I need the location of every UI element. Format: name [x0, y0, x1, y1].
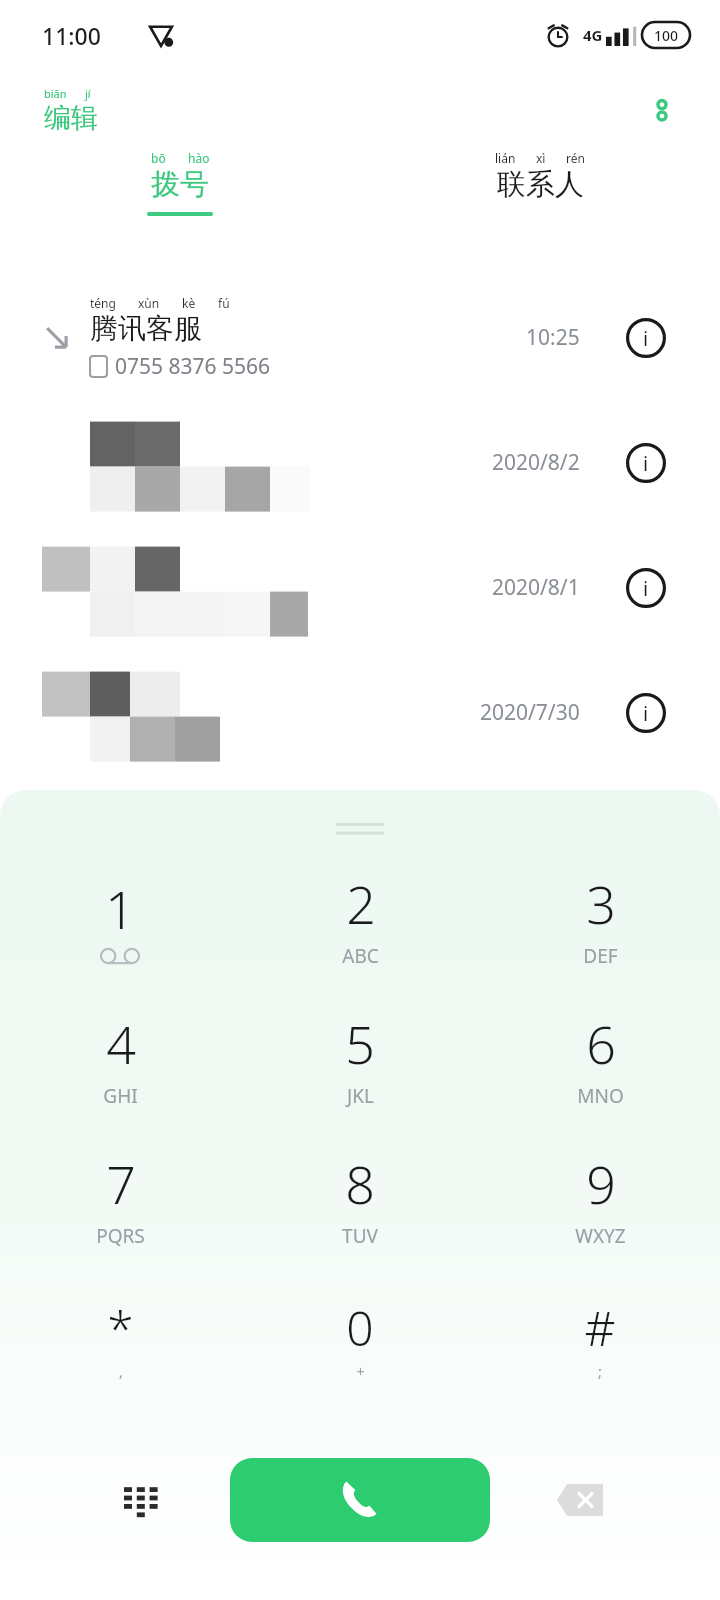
staticText: 11:00 — [42, 20, 101, 51]
staticText: kè — [182, 295, 196, 311]
button[interactable]: Delete — [544, 1464, 616, 1536]
staticText: 2020/8/2 — [492, 448, 580, 477]
staticText: PQRS — [96, 1223, 145, 1249]
staticText: 拨号 — [151, 166, 209, 203]
staticText: 2020/8/1 — [492, 573, 580, 602]
staticText: 编辑 — [44, 101, 98, 135]
button[interactable]: Call details — [620, 312, 672, 364]
staticText: 1 — [105, 873, 135, 944]
button[interactable]: 0 — [240, 1268, 480, 1408]
staticText: 100 — [654, 26, 679, 45]
staticText: 2 — [346, 868, 376, 939]
staticText: lián — [495, 150, 516, 166]
staticText: biān — [44, 86, 67, 101]
staticText: ; — [598, 1362, 602, 1381]
staticText: 7 — [106, 1148, 136, 1219]
button[interactable]: bō — [0, 150, 360, 245]
staticText: 10:25 — [526, 323, 580, 352]
staticText: 9 — [586, 1148, 616, 1219]
staticText: téng — [90, 295, 116, 311]
staticText: fú — [218, 295, 230, 311]
button[interactable]: 4 — [0, 988, 240, 1128]
staticText: WXYZ — [575, 1223, 626, 1249]
button[interactable]: Hide keypad — [108, 1464, 180, 1536]
staticText: 4G — [583, 25, 603, 45]
staticText: 0755 8376 5566 — [115, 352, 271, 381]
staticText: 0 — [346, 1295, 374, 1360]
staticText: # — [584, 1295, 616, 1360]
button[interactable]: Call details — [620, 562, 672, 614]
staticText: 4 — [106, 1008, 136, 1079]
button[interactable]: 2020/8/2 — [0, 400, 720, 525]
button[interactable]: 1 — [0, 848, 240, 988]
staticText: 2020/7/30 — [480, 698, 580, 727]
button[interactable]: 9 — [480, 1128, 720, 1268]
staticText: bō — [151, 150, 166, 166]
staticText: 8 — [345, 1148, 375, 1219]
staticText: + — [356, 1362, 365, 1381]
button[interactable]: 6 — [480, 988, 720, 1128]
button[interactable]: * — [0, 1268, 240, 1408]
staticText: 腾讯客服 — [90, 311, 202, 346]
staticText: GHI — [103, 1083, 138, 1109]
staticText: 联系人 — [497, 166, 584, 203]
staticText: TUV — [342, 1223, 378, 1249]
button[interactable]: lián — [360, 150, 720, 245]
staticText: rén — [566, 150, 585, 166]
staticText: xùn — [138, 295, 160, 311]
staticText: xì — [536, 150, 546, 166]
staticText: 6 — [586, 1008, 616, 1079]
button[interactable]: 5 — [240, 988, 480, 1128]
staticText: i — [643, 575, 649, 602]
staticText: hào — [188, 150, 210, 166]
button[interactable]: 2020/8/1 — [0, 525, 720, 650]
staticText: i — [643, 325, 649, 352]
staticText: * — [107, 1295, 134, 1360]
staticText: 3 — [586, 868, 616, 939]
button[interactable]: # — [480, 1268, 720, 1408]
staticText: jí — [85, 86, 91, 101]
button[interactable]: 3 — [480, 848, 720, 988]
button[interactable]: téng — [0, 275, 720, 400]
staticText: ABC — [342, 943, 379, 969]
staticText: i — [643, 450, 649, 477]
staticText: 5 — [345, 1008, 375, 1079]
button[interactable]: 2020/7/30 — [0, 650, 720, 775]
button[interactable]: More options — [634, 82, 690, 138]
button[interactable]: 2 — [240, 848, 480, 988]
button[interactable]: Call details — [620, 687, 672, 739]
button[interactable]: 8 — [240, 1128, 480, 1268]
button[interactable]: Call details — [620, 437, 672, 489]
button[interactable]: 7 — [0, 1128, 240, 1268]
staticText: i — [643, 700, 649, 727]
button[interactable]: Call — [230, 1458, 490, 1542]
button[interactable]: biān — [40, 82, 102, 139]
staticText: DEF — [583, 943, 618, 969]
staticText: MNO — [577, 1083, 624, 1109]
staticText: JKL — [347, 1083, 374, 1109]
staticText: , — [119, 1362, 123, 1381]
